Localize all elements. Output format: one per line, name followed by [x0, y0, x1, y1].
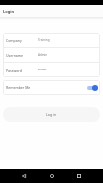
button[interactable]: Recent apps — [73, 170, 85, 182]
staticText: Username — [6, 53, 24, 58]
staticText: Password — [6, 68, 22, 73]
staticText: Admin — [38, 53, 48, 57]
button[interactable]: Password — [3, 63, 100, 77]
button[interactable]: Username — [3, 48, 100, 62]
staticText: Remember Me — [6, 85, 31, 90]
staticText: Training — [38, 38, 50, 42]
button[interactable]: Log in — [3, 107, 100, 122]
button[interactable]: Home — [46, 170, 58, 182]
button[interactable]: Company — [3, 33, 100, 47]
button[interactable]: Back — [18, 170, 30, 182]
staticText: Company — [6, 38, 22, 43]
button[interactable]: Remember Me — [3, 80, 100, 95]
staticText: Login — [3, 9, 15, 14]
staticText: Log in — [46, 112, 57, 117]
staticText: ••••••• — [38, 68, 47, 72]
